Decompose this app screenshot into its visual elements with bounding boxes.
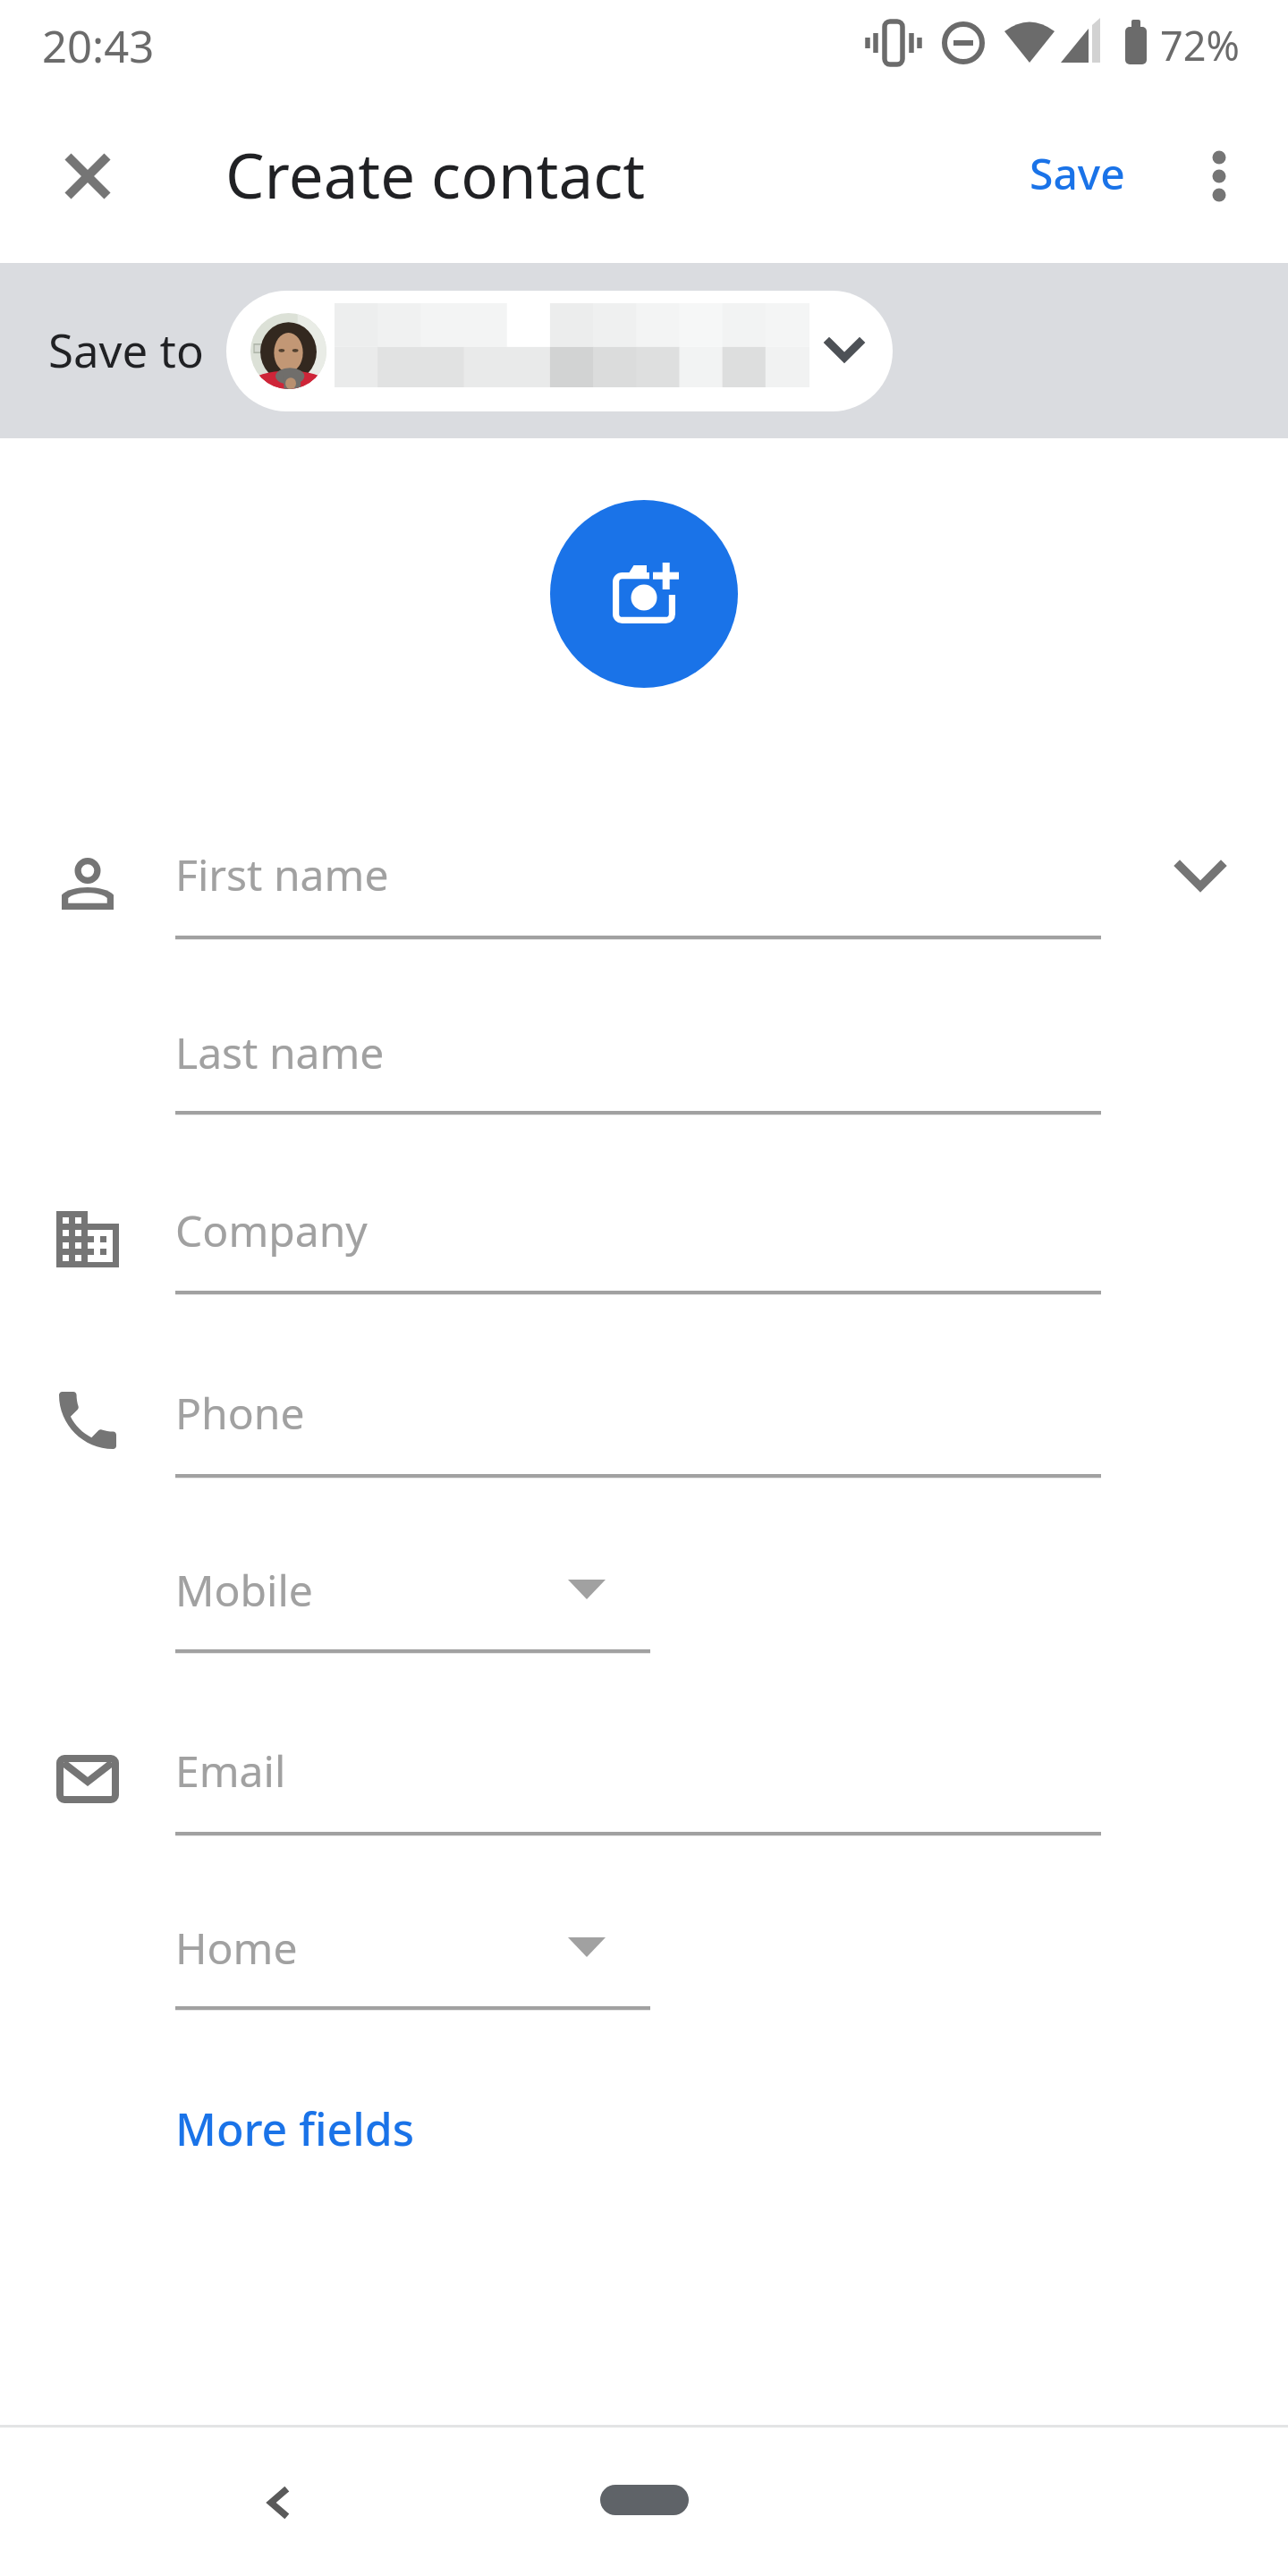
button[interactable]: More fields bbox=[175, 2077, 444, 2181]
button[interactable]: Phone bbox=[38, 1370, 138, 1470]
staticText: Home bbox=[175, 1919, 298, 1977]
button[interactable]: Last name bbox=[175, 1000, 1101, 1126]
button[interactable] bbox=[226, 291, 893, 411]
staticText: Save to bbox=[48, 318, 204, 380]
staticText: First name bbox=[175, 845, 389, 903]
staticText: Email bbox=[175, 1741, 286, 1800]
staticText: Create contact bbox=[225, 132, 646, 216]
button[interactable]: More options bbox=[1169, 126, 1269, 226]
button[interactable]: Mobile bbox=[175, 1538, 650, 1665]
staticText: Company bbox=[175, 1201, 368, 1259]
staticText: Last name bbox=[175, 1023, 385, 1081]
button[interactable]: Home bbox=[175, 1895, 650, 2021]
button[interactable]: Close bbox=[38, 126, 138, 226]
staticText: 72% bbox=[1160, 18, 1240, 72]
staticText: Mobile bbox=[175, 1561, 313, 1619]
button[interactable]: Back bbox=[228, 2453, 328, 2553]
staticText: Save bbox=[1030, 144, 1125, 202]
button[interactable]: Home bbox=[600, 2485, 689, 2515]
button[interactable]: Company bbox=[38, 1189, 138, 1289]
button[interactable]: Email bbox=[38, 1728, 138, 1828]
button[interactable]: Company bbox=[175, 1178, 1101, 1306]
button[interactable]: Expand name fields bbox=[1150, 826, 1250, 927]
button[interactable]: Phone bbox=[175, 1360, 1101, 1489]
button[interactable]: First name bbox=[175, 822, 1101, 951]
button[interactable]: Add photo bbox=[550, 500, 738, 688]
button[interactable]: Save bbox=[1005, 123, 1149, 223]
staticText: Phone bbox=[175, 1384, 305, 1442]
button[interactable]: Email bbox=[175, 1718, 1101, 1847]
staticText: More fields bbox=[175, 2098, 415, 2159]
staticText: 20:43 bbox=[42, 16, 155, 76]
button[interactable]: Name bbox=[38, 833, 138, 933]
